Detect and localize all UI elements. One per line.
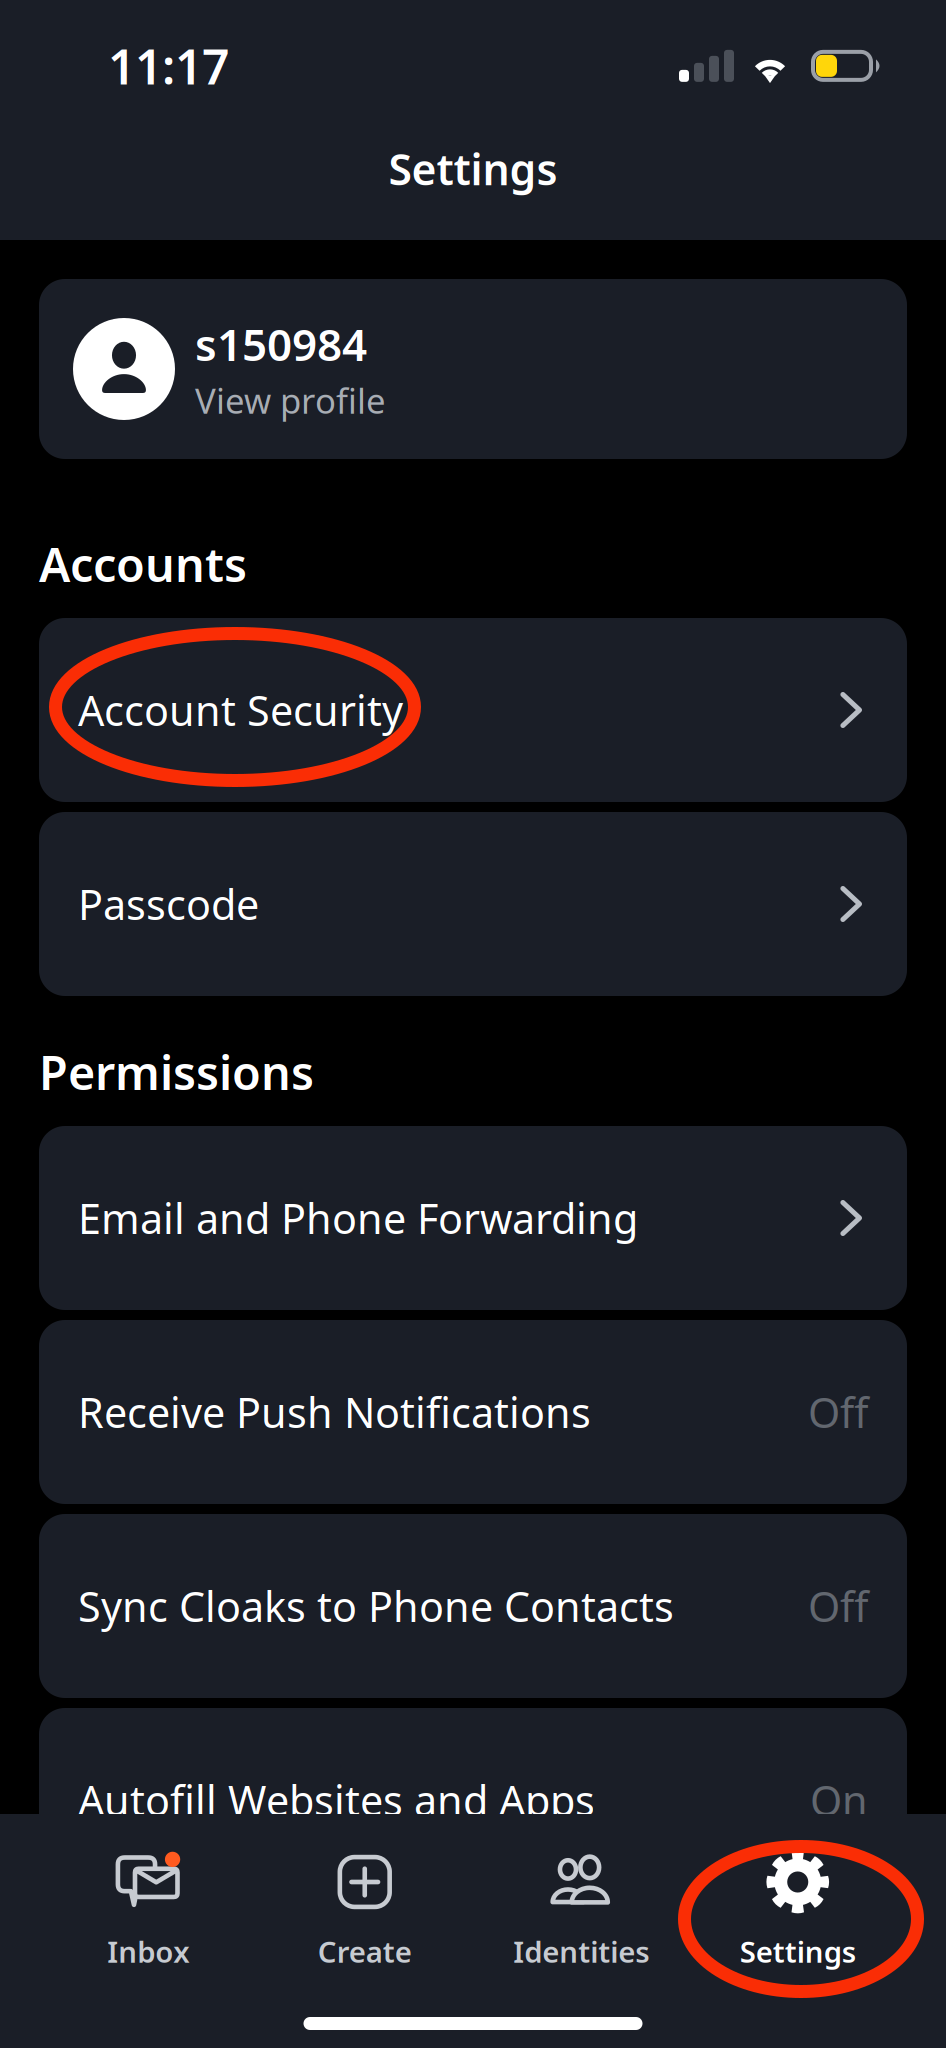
staticText: Create — [318, 1932, 412, 1971]
staticText: Identities — [513, 1932, 649, 1971]
staticText: Accounts — [39, 533, 247, 595]
staticText: Receive Push Notifications — [78, 1385, 591, 1439]
button[interactable]: Email and Phone Forwarding — [39, 1126, 907, 1310]
staticText: Passcode — [78, 877, 259, 931]
button[interactable]: Inbox — [40, 1848, 256, 1971]
staticText: Autofill Websites and Apps — [78, 1773, 595, 1827]
staticText: 11:17 — [108, 34, 229, 98]
button[interactable]: Autofill Websites and Apps — [39, 1708, 907, 1892]
button[interactable]: s150984 — [39, 279, 907, 459]
staticText: Off — [808, 1385, 868, 1439]
button[interactable]: Identities — [473, 1848, 689, 1971]
button[interactable]: Settings — [689, 1848, 906, 1971]
staticText: Sync Cloaks to Phone Contacts — [78, 1579, 674, 1633]
button[interactable]: Create — [256, 1848, 473, 1971]
staticText: s150984 — [195, 315, 367, 373]
staticText: Permissions — [39, 1041, 314, 1103]
staticText: Off — [808, 1579, 868, 1633]
button[interactable]: Account Security — [39, 618, 907, 802]
staticText: Settings — [388, 140, 557, 197]
staticText: Account Security — [78, 683, 403, 737]
button[interactable]: Passcode — [39, 812, 907, 996]
staticText: On — [810, 1773, 868, 1827]
staticText: View profile — [195, 377, 386, 423]
button[interactable]: Sync Cloaks to Phone Contacts — [39, 1514, 907, 1698]
staticText: Inbox — [107, 1932, 189, 1971]
staticText: Settings — [740, 1932, 856, 1971]
staticText: Email and Phone Forwarding — [78, 1191, 638, 1245]
button[interactable]: Receive Push Notifications — [39, 1320, 907, 1504]
